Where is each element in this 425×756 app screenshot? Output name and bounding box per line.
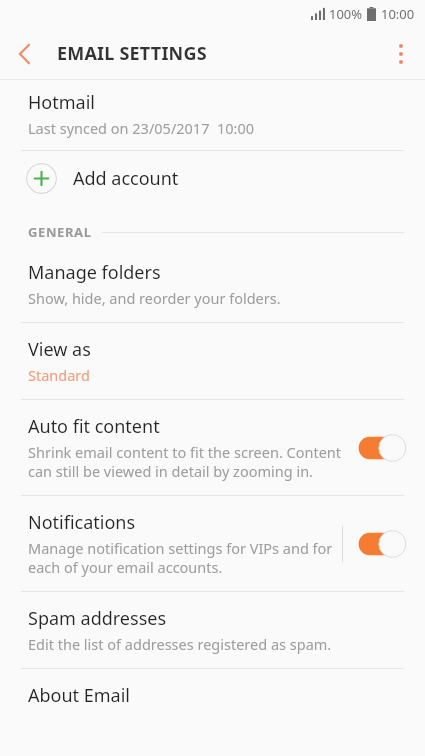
- staticText: Manage folders: [28, 260, 161, 285]
- staticText: Spam addresses: [28, 606, 167, 631]
- button[interactable]: About Email: [0, 669, 425, 722]
- button[interactable]: Notifications: [0, 496, 425, 591]
- staticText: 10:00: [381, 5, 415, 23]
- staticText: Manage notification settings for VIPs an…: [28, 538, 342, 577]
- button[interactable]: Spam addresses: [0, 592, 425, 668]
- staticText: GENERAL: [28, 223, 92, 241]
- staticText: About Email: [28, 683, 130, 708]
- staticText: Edit the list of addresses registered as…: [28, 634, 332, 654]
- staticText: Show, hide, and reorder your folders.: [28, 288, 281, 308]
- staticText: 100%: [329, 5, 363, 23]
- staticText: Add account: [73, 166, 179, 191]
- button[interactable]: Manage folders: [0, 257, 425, 322]
- button[interactable]: View as: [0, 323, 425, 399]
- staticText: Standard: [28, 365, 90, 385]
- staticText: Hotmail: [28, 90, 95, 115]
- button[interactable]: Navigate up: [0, 30, 48, 78]
- button[interactable]: Hotmail: [0, 80, 425, 150]
- button[interactable]: Toggle on: [353, 527, 409, 561]
- button[interactable]: Auto fit content: [0, 400, 425, 495]
- button[interactable]: Toggle on: [353, 431, 409, 465]
- staticText: Notifications: [28, 510, 136, 535]
- staticText: Last synced on 23/05/2017 10:00: [28, 118, 255, 138]
- staticText: Auto fit content: [28, 414, 160, 439]
- staticText: Shrink email content to fit the screen. …: [28, 442, 347, 481]
- staticText: View as: [28, 337, 91, 362]
- button[interactable]: More options: [377, 30, 425, 78]
- staticText: EMAIL SETTINGS: [57, 41, 207, 66]
- button[interactable]: Add account: [0, 151, 425, 206]
